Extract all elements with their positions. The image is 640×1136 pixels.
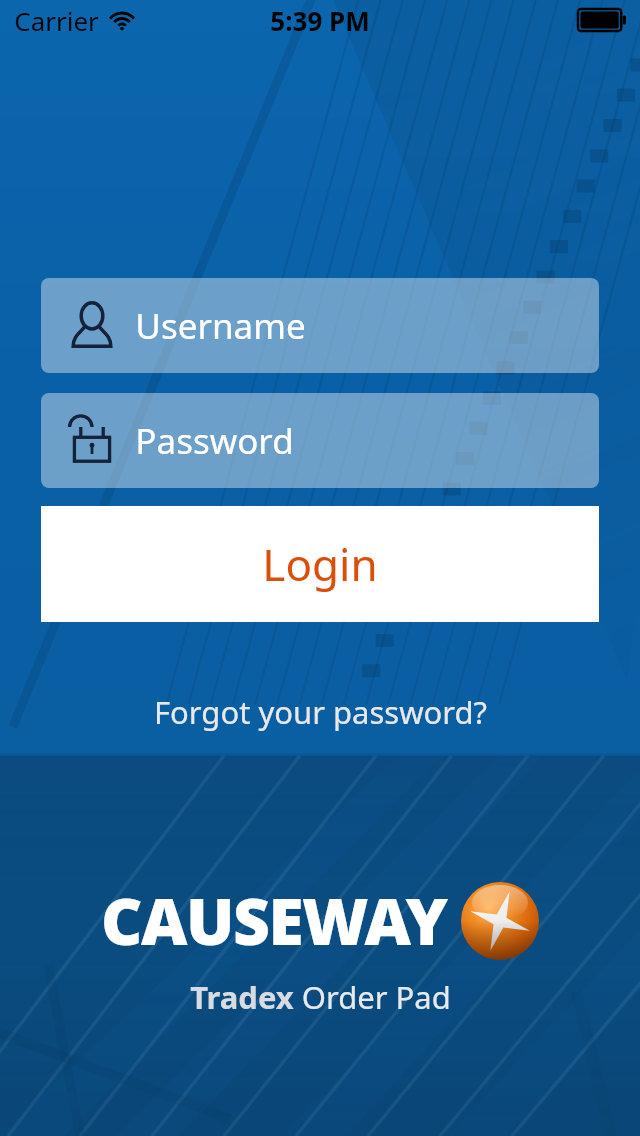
button[interactable]: Forgot your password? [0,684,640,740]
staticText: Login [262,534,378,594]
staticText: Carrier [14,3,99,38]
staticText: Password [135,417,294,465]
staticText: CAUSEWAY [101,877,447,964]
staticText: Tradex Order Pad [190,976,451,1018]
button[interactable]: Username [41,278,599,373]
staticText: Username [135,302,306,350]
staticText: 5:39 PM [270,3,370,38]
button[interactable]: Login [41,506,599,622]
staticText: Forgot your password? [154,691,487,733]
button[interactable]: Password [41,393,599,488]
